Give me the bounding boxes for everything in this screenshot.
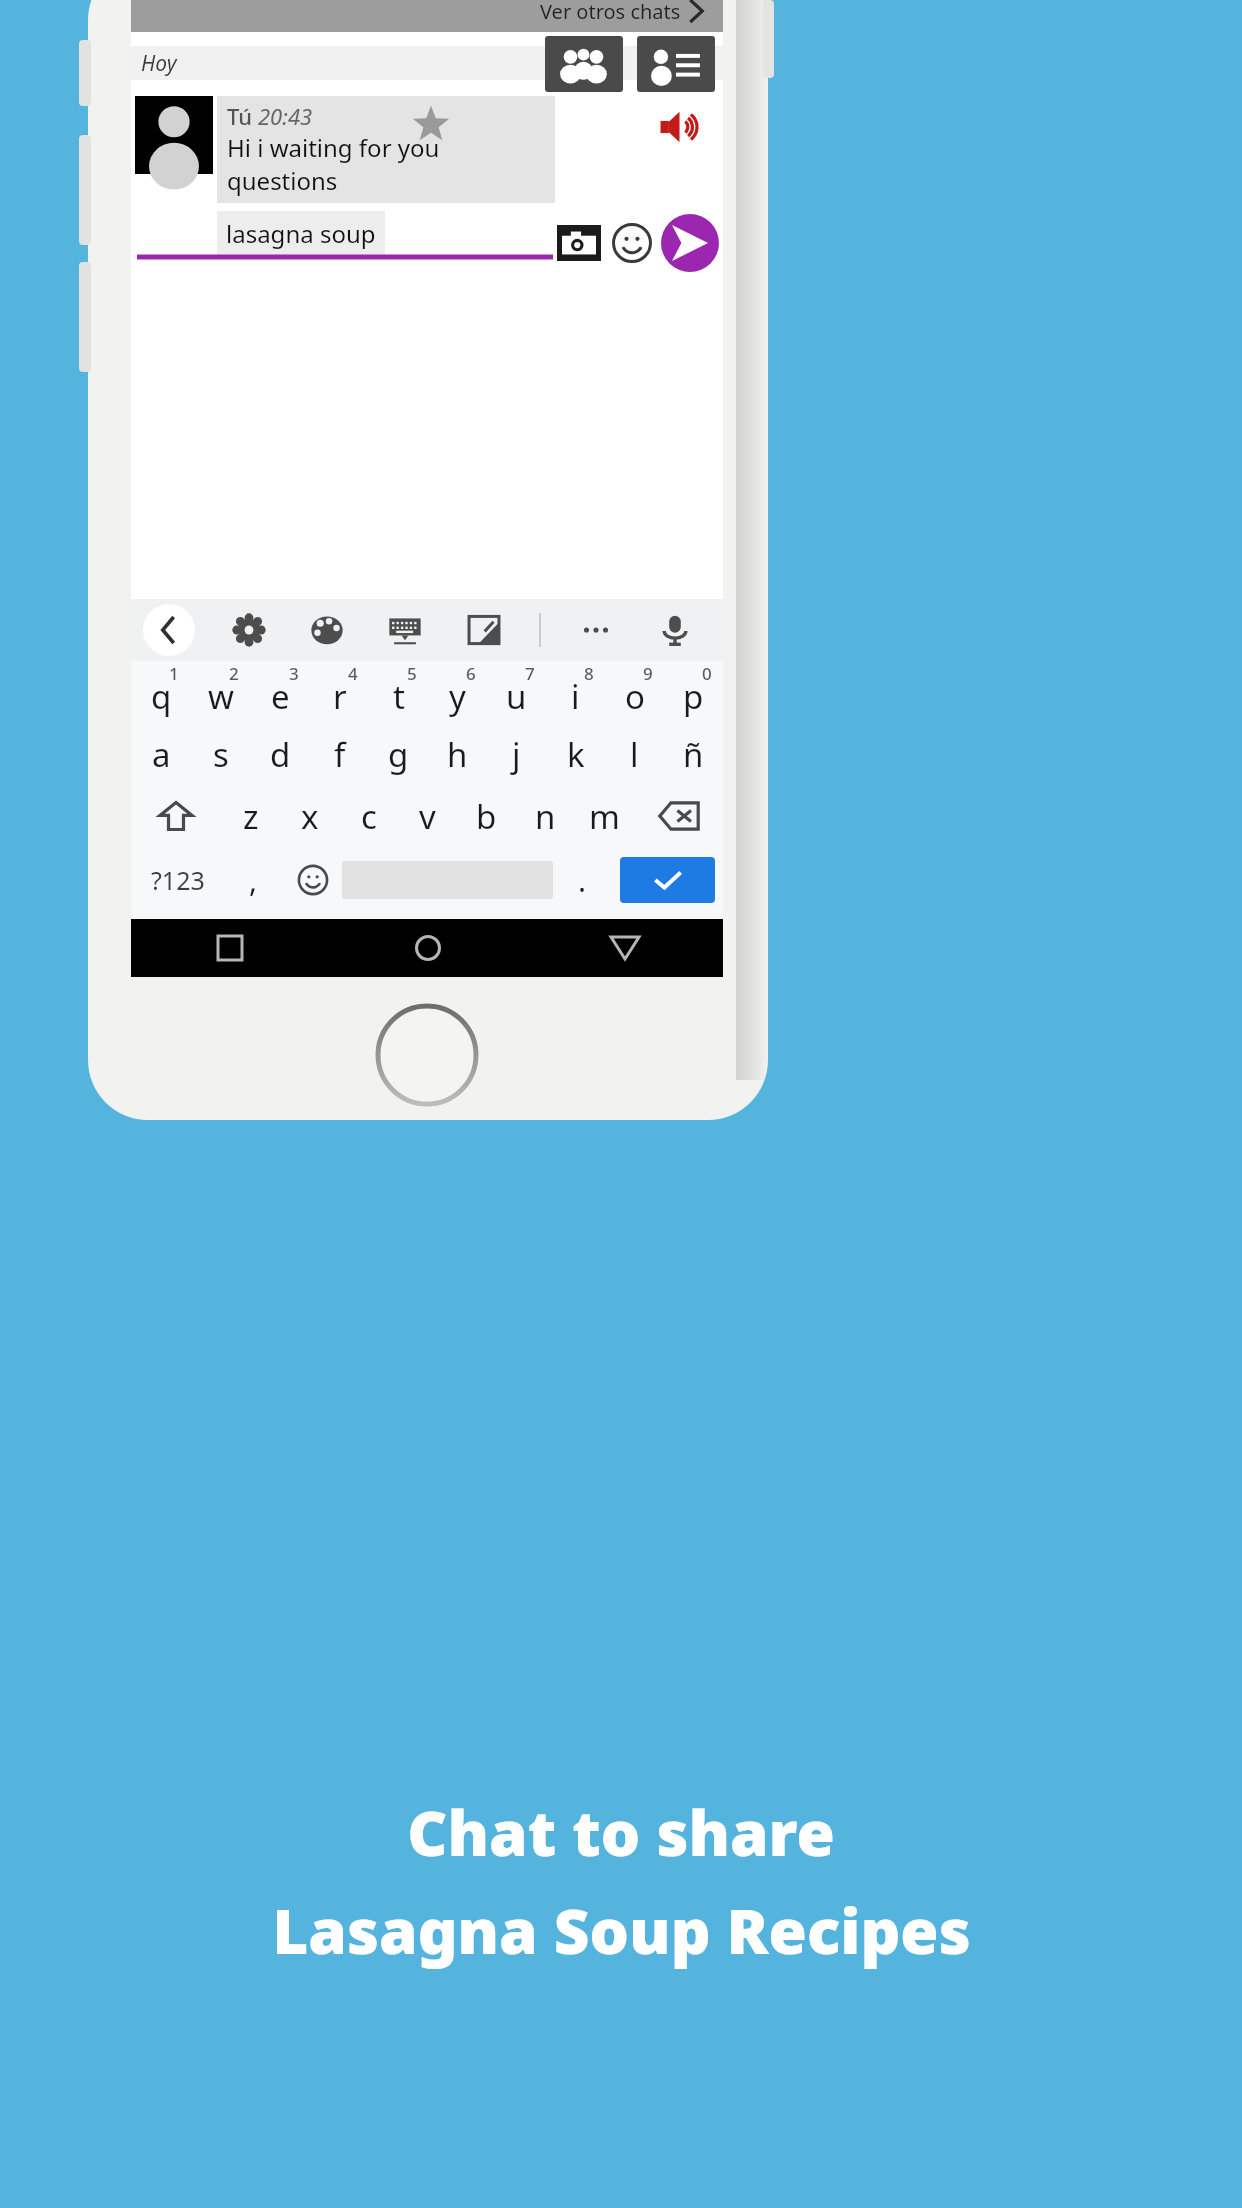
button[interactable]: 7	[487, 661, 546, 723]
staticText: 7	[525, 662, 535, 685]
button[interactable]: z	[221, 785, 280, 847]
staticText: g	[388, 732, 409, 777]
button[interactable]: h	[428, 723, 487, 785]
button[interactable]: 6	[428, 661, 487, 723]
staticText: u	[506, 674, 527, 719]
staticText: t	[393, 674, 405, 719]
staticText: o	[625, 674, 645, 719]
button[interactable]: .	[553, 847, 612, 913]
staticText: 6	[466, 662, 476, 685]
button[interactable]: 0	[664, 661, 723, 723]
button[interactable]: m	[575, 785, 634, 847]
staticText: 5	[407, 662, 417, 685]
staticText: h	[447, 732, 468, 777]
staticText: Ver otros chats	[540, 0, 681, 25]
button[interactable]: Emoji	[611, 222, 653, 264]
staticText: a	[152, 732, 171, 777]
button[interactable]: ñ	[664, 723, 723, 785]
button[interactable]: 4	[310, 661, 369, 723]
staticText: w	[208, 674, 234, 719]
staticText: Hi i waiting for you questions	[227, 131, 547, 197]
button[interactable]: 1	[131, 661, 191, 723]
staticText: lasagna soup	[226, 217, 376, 250]
button[interactable]: j	[487, 723, 546, 785]
button[interactable]: Home	[329, 919, 526, 977]
staticText: Chat to share	[407, 1790, 835, 1874]
button[interactable]: Send	[661, 214, 719, 272]
button[interactable]: x	[280, 785, 339, 847]
staticText: b	[476, 794, 497, 839]
button[interactable]: c	[339, 785, 398, 847]
button[interactable]: 5	[369, 661, 428, 723]
button[interactable]: Contact list	[637, 36, 715, 92]
staticText: e	[271, 674, 290, 719]
button[interactable]: Keyboard layout	[381, 606, 429, 654]
staticText: j	[512, 732, 521, 777]
button[interactable]: l	[605, 723, 664, 785]
button[interactable]: Camera	[557, 225, 601, 261]
button[interactable]: Resize	[460, 606, 508, 654]
staticText: 8	[584, 662, 594, 685]
staticText: l	[630, 732, 639, 777]
staticText: p	[683, 674, 704, 719]
button[interactable]: More	[572, 606, 620, 654]
button[interactable]: lasagna soup	[226, 217, 376, 250]
staticText: 2	[229, 662, 239, 685]
button[interactable]: Ver otros chats	[131, 0, 723, 32]
staticText: ñ	[683, 732, 704, 777]
button[interactable]: s	[191, 723, 251, 785]
staticText: 1	[169, 662, 179, 685]
staticText: q	[151, 674, 172, 719]
button[interactable]: 8	[546, 661, 605, 723]
button[interactable]: f	[310, 723, 369, 785]
staticText: 4	[348, 662, 358, 685]
button[interactable]: Shift	[131, 785, 221, 847]
button[interactable]: Recents	[131, 919, 329, 977]
staticText: x	[301, 794, 319, 839]
staticText: ?123	[151, 863, 205, 897]
staticText: 20:43	[258, 101, 313, 131]
staticText: s	[213, 732, 229, 777]
button[interactable]: g	[369, 723, 428, 785]
button[interactable]: Sound	[655, 104, 701, 150]
staticText: d	[270, 732, 291, 777]
button[interactable]: b	[457, 785, 516, 847]
staticText: v	[419, 794, 436, 839]
button[interactable]: Home	[375, 1003, 479, 1107]
button[interactable]: k	[546, 723, 605, 785]
button[interactable]: n	[516, 785, 575, 847]
button[interactable]: Theme	[303, 606, 351, 654]
staticText: y	[449, 674, 466, 719]
button[interactable]: ?123	[131, 847, 224, 913]
staticText: 0	[702, 662, 712, 685]
staticText: c	[361, 794, 377, 839]
button[interactable]: ,	[224, 847, 283, 913]
staticText: k	[567, 732, 585, 777]
button[interactable]: Backspace	[634, 785, 723, 847]
staticText: .	[578, 860, 587, 901]
staticText: Lasagna Soup Recipes	[272, 1888, 971, 1972]
button[interactable]: d	[251, 723, 310, 785]
button[interactable]: Tú	[227, 101, 547, 197]
staticText: Hoy	[141, 49, 177, 78]
button[interactable]: a	[131, 723, 191, 785]
button[interactable]: 3	[251, 661, 310, 723]
staticText: n	[535, 794, 556, 839]
button[interactable]: Enter	[620, 857, 715, 903]
staticText: m	[589, 794, 620, 839]
button[interactable]: Group chat	[545, 36, 623, 92]
staticText: Tú	[227, 101, 258, 131]
button[interactable]: Back	[526, 919, 723, 977]
button[interactable]: v	[398, 785, 457, 847]
button[interactable]: Voice input	[651, 606, 699, 654]
button[interactable]: Emoji	[283, 847, 342, 913]
button[interactable]: 2	[191, 661, 251, 723]
staticText: r	[333, 674, 347, 719]
button[interactable]: Collapse toolbar	[143, 604, 195, 656]
button[interactable]: Settings	[225, 606, 273, 654]
staticText: 3	[289, 662, 299, 685]
staticText: ,	[249, 860, 258, 901]
staticText: f	[334, 732, 346, 777]
button[interactable]: 9	[605, 661, 664, 723]
